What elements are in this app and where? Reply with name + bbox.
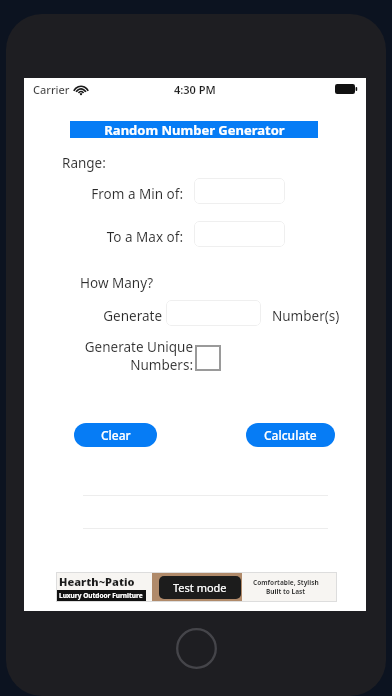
button[interactable]: Clear — [74, 423, 157, 447]
button[interactable] — [194, 178, 285, 204]
staticText: To a Max of: — [85, 228, 183, 246]
staticText: From a Min of: — [85, 185, 183, 203]
button[interactable] — [194, 221, 285, 247]
staticText: Generate — [88, 307, 162, 325]
staticText: Random Number Generator — [104, 121, 285, 138]
staticText: How Many? — [80, 274, 154, 292]
staticText: Built to Last — [266, 587, 306, 596]
staticText: Carrier — [33, 82, 70, 97]
staticText: Luxury Outdoor Furniture — [59, 591, 143, 600]
staticText: Number(s) — [272, 307, 340, 325]
staticText: Test mode — [173, 580, 227, 595]
staticText: Range: — [62, 154, 106, 172]
button[interactable] — [166, 300, 261, 326]
staticText: Calculate — [264, 427, 317, 443]
staticText: Hearth~Patio — [59, 574, 135, 589]
staticText: Clear — [101, 427, 131, 443]
staticText: Comfortable, Stylish — [253, 578, 319, 587]
button[interactable]: Calculate — [246, 423, 335, 447]
staticText: 4:30 PM — [174, 82, 216, 97]
button[interactable] — [195, 345, 221, 371]
staticText: Generate Unique Numbers: — [48, 338, 193, 374]
